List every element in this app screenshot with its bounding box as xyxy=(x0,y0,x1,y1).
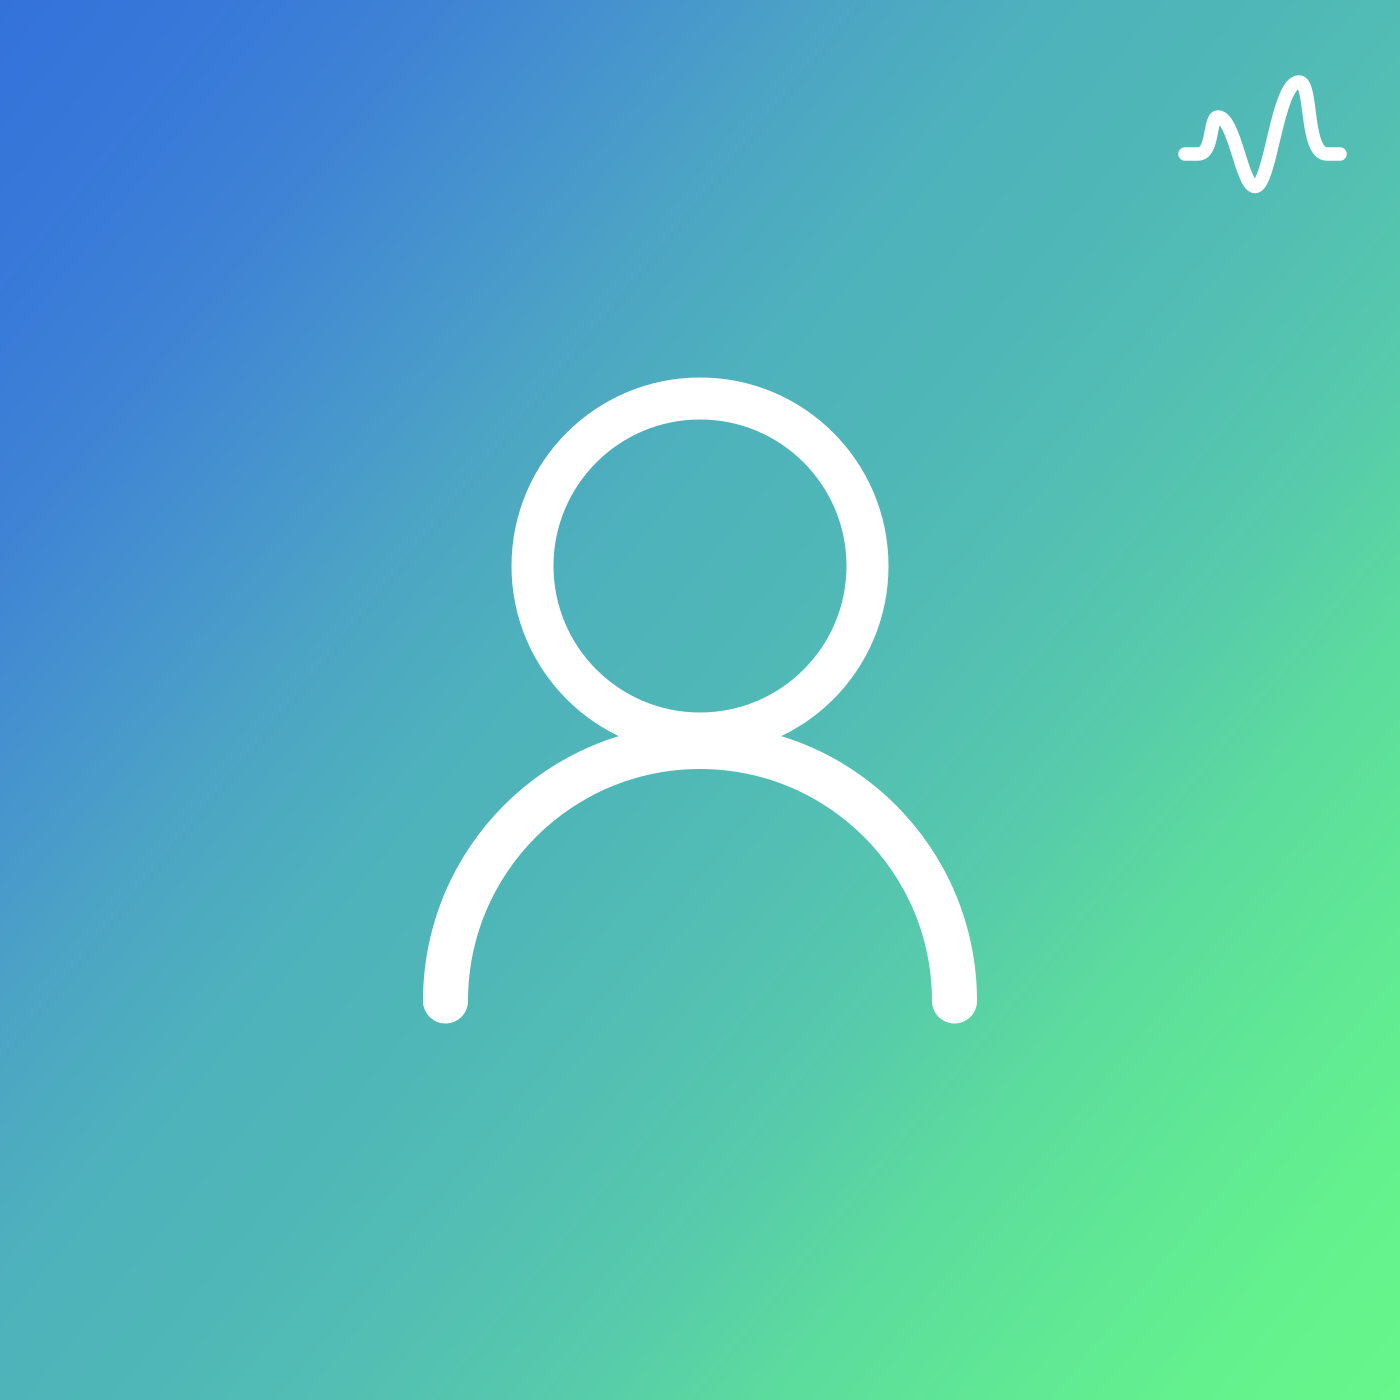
button[interactable]: Anchor xyxy=(0,0,1400,1400)
button[interactable]: Profile xyxy=(0,0,1400,1400)
